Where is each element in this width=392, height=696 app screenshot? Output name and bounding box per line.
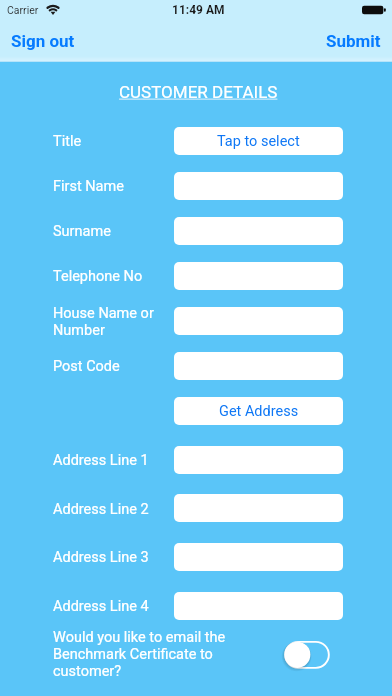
staticText: Address Line 3 <box>53 549 149 566</box>
button[interactable]: Submit <box>315 25 392 57</box>
staticText: Submit <box>326 31 381 51</box>
staticText: Address Line 2 <box>53 501 149 518</box>
button[interactable] <box>174 262 343 290</box>
staticText: Title <box>53 133 82 150</box>
staticText: Get Address <box>219 403 299 420</box>
staticText: Sign out <box>11 31 75 51</box>
staticText: Post Code <box>53 358 120 375</box>
button[interactable] <box>174 543 343 571</box>
button[interactable] <box>174 592 343 620</box>
staticText: 11:49 AM <box>172 3 225 17</box>
staticText: Address Line 1 <box>53 452 149 469</box>
staticText: CUSTOMER DETAILS <box>119 82 278 102</box>
button[interactable] <box>174 217 343 245</box>
button[interactable] <box>174 307 343 335</box>
staticText: Tap to select <box>217 133 300 150</box>
button[interactable]: Tap to select <box>174 127 343 155</box>
staticText: Surname <box>53 223 111 240</box>
staticText: Carrier <box>7 4 39 16</box>
staticText: Telephone No <box>53 268 143 285</box>
staticText: First Name <box>53 178 124 195</box>
button[interactable] <box>174 172 343 200</box>
button[interactable] <box>174 494 343 522</box>
button[interactable]: Get Address <box>174 397 343 425</box>
button[interactable]: Email Benchmark Certificate to customer <box>283 640 331 670</box>
button[interactable]: Sign out <box>0 25 86 57</box>
staticText: Would you like to email the Benchmark Ce… <box>53 629 226 680</box>
staticText: House Name or Number <box>53 305 154 339</box>
button[interactable] <box>174 446 343 474</box>
button[interactable] <box>174 352 343 380</box>
staticText: Address Line 4 <box>53 598 149 615</box>
